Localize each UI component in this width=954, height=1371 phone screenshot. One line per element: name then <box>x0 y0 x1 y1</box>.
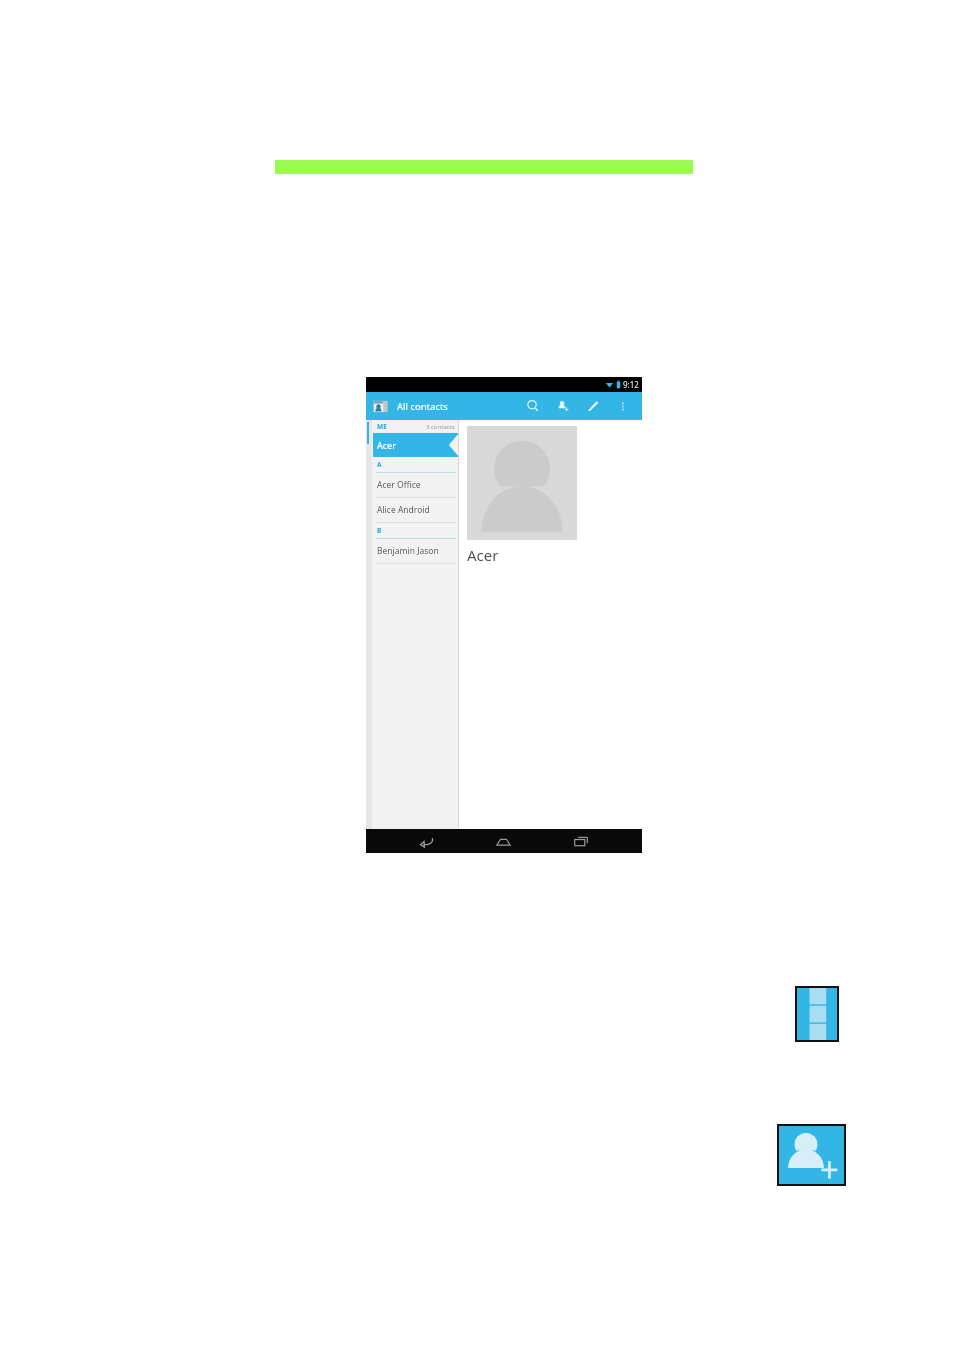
button[interactable]: Acer <box>373 433 459 457</box>
button[interactable]: Add new contact icon <box>777 1124 846 1186</box>
staticText: A <box>377 460 382 469</box>
button[interactable]: Recent apps <box>564 829 598 853</box>
button[interactable]: More options <box>608 392 638 420</box>
button[interactable]: Add contact <box>548 392 578 420</box>
staticText: Benjamin Jason <box>377 545 439 557</box>
staticText: 9:12 <box>623 379 639 390</box>
staticText: All contacts <box>397 400 448 413</box>
button[interactable]: Alice Android <box>373 498 459 523</box>
button[interactable]: More options menu icon <box>795 986 839 1042</box>
button[interactable]: Contacts app, navigate up <box>372 398 389 415</box>
staticText: B <box>377 526 382 535</box>
button[interactable]: Home <box>486 829 520 853</box>
staticText: Alice Android <box>377 504 430 516</box>
button[interactable]: Acer Office <box>373 473 459 498</box>
staticText: Acer <box>377 439 396 451</box>
staticText: 3 contacts <box>426 423 455 431</box>
button[interactable]: Edit <box>578 392 608 420</box>
button[interactable]: Search <box>518 392 548 420</box>
staticText: Acer <box>467 545 499 565</box>
button[interactable]: Benjamin Jason <box>373 539 459 564</box>
button[interactable]: Back <box>409 829 443 853</box>
staticText: Acer Office <box>377 479 421 491</box>
staticText: ME <box>377 422 387 431</box>
button[interactable]: All contacts <box>397 392 448 420</box>
